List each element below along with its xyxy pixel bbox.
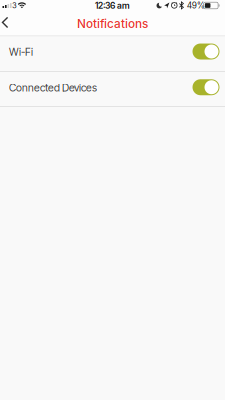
staticText: Notifications bbox=[77, 17, 148, 31]
staticText: 49% bbox=[187, 0, 205, 11]
button[interactable]: Wi-Fi bbox=[192, 43, 219, 59]
staticText: Connected Devices bbox=[9, 81, 97, 94]
staticText: Wi-Fi bbox=[9, 46, 33, 58]
staticText: 12:36 am bbox=[95, 0, 130, 11]
staticText: 3 bbox=[12, 1, 17, 10]
button[interactable]: Connected Devices bbox=[192, 79, 219, 95]
button[interactable]: Back bbox=[0, 13, 18, 36]
